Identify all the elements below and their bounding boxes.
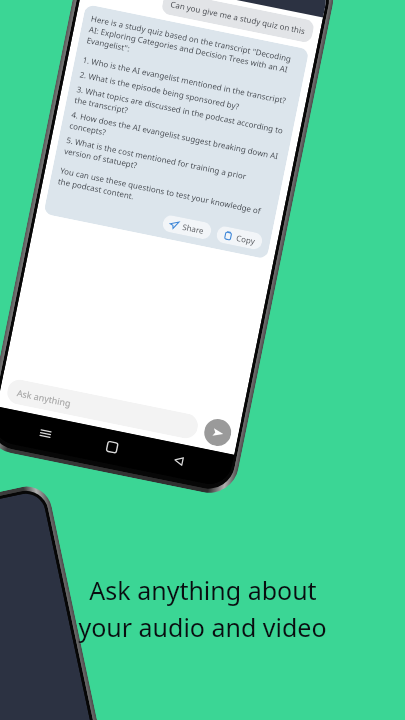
button[interactable]: Home <box>94 429 130 465</box>
button[interactable]: Can you give me a study quiz on this <box>161 0 315 44</box>
button[interactable]: Ask anything <box>5 377 200 441</box>
staticText: Share <box>181 221 205 236</box>
button[interactable]: Here is a study quiz based on the transc… <box>43 4 309 259</box>
staticText: 1. Who is the AI evangelist mentioned in… <box>82 54 288 106</box>
staticText: Here is a study quiz based on the transc… <box>86 12 300 87</box>
staticText: 5. What is the cost mentioned for traini… <box>63 134 275 198</box>
button[interactable]: Recents <box>28 416 63 451</box>
staticText: 3. What topics are discussed in the podc… <box>74 83 286 147</box>
staticText: Ask anything <box>16 386 72 409</box>
button[interactable]: Send <box>202 416 234 448</box>
staticText: 2. What is the episode being sponsored b… <box>79 68 241 112</box>
button[interactable]: Back <box>161 443 196 478</box>
button[interactable]: Copy <box>215 225 264 251</box>
staticText: Copy <box>235 232 256 246</box>
staticText: You can use these questions to test your… <box>57 164 269 228</box>
staticText: Can you give me a study quiz on this <box>170 0 306 36</box>
staticText: your audio and video <box>78 610 327 644</box>
staticText: 4. How does the AI evangelist suggest br… <box>68 109 281 172</box>
staticText: Ask anything about <box>89 573 317 607</box>
button[interactable]: Share <box>161 214 213 240</box>
